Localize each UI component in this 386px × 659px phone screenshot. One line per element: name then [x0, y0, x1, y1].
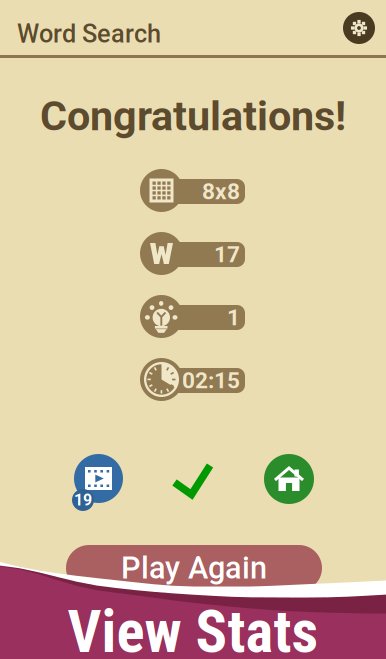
button[interactable]: Done	[172, 462, 213, 498]
button[interactable]: Watch video for hints	[72, 454, 125, 511]
button[interactable]: Settings	[343, 12, 375, 44]
staticText: Word Search	[17, 19, 161, 49]
staticText: 8x8	[202, 178, 240, 205]
button[interactable]: Home	[264, 454, 314, 504]
staticText: Congratulations!	[40, 92, 346, 140]
button[interactable]: Play Again	[66, 545, 322, 591]
staticText: 02:15	[182, 367, 240, 394]
staticText: Play Again	[121, 550, 267, 586]
staticText: 1	[227, 304, 240, 331]
staticText: View Stats	[67, 598, 318, 659]
staticText: 19	[74, 491, 92, 509]
button[interactable]: View Stats	[0, 608, 386, 656]
staticText: 17	[214, 241, 240, 268]
